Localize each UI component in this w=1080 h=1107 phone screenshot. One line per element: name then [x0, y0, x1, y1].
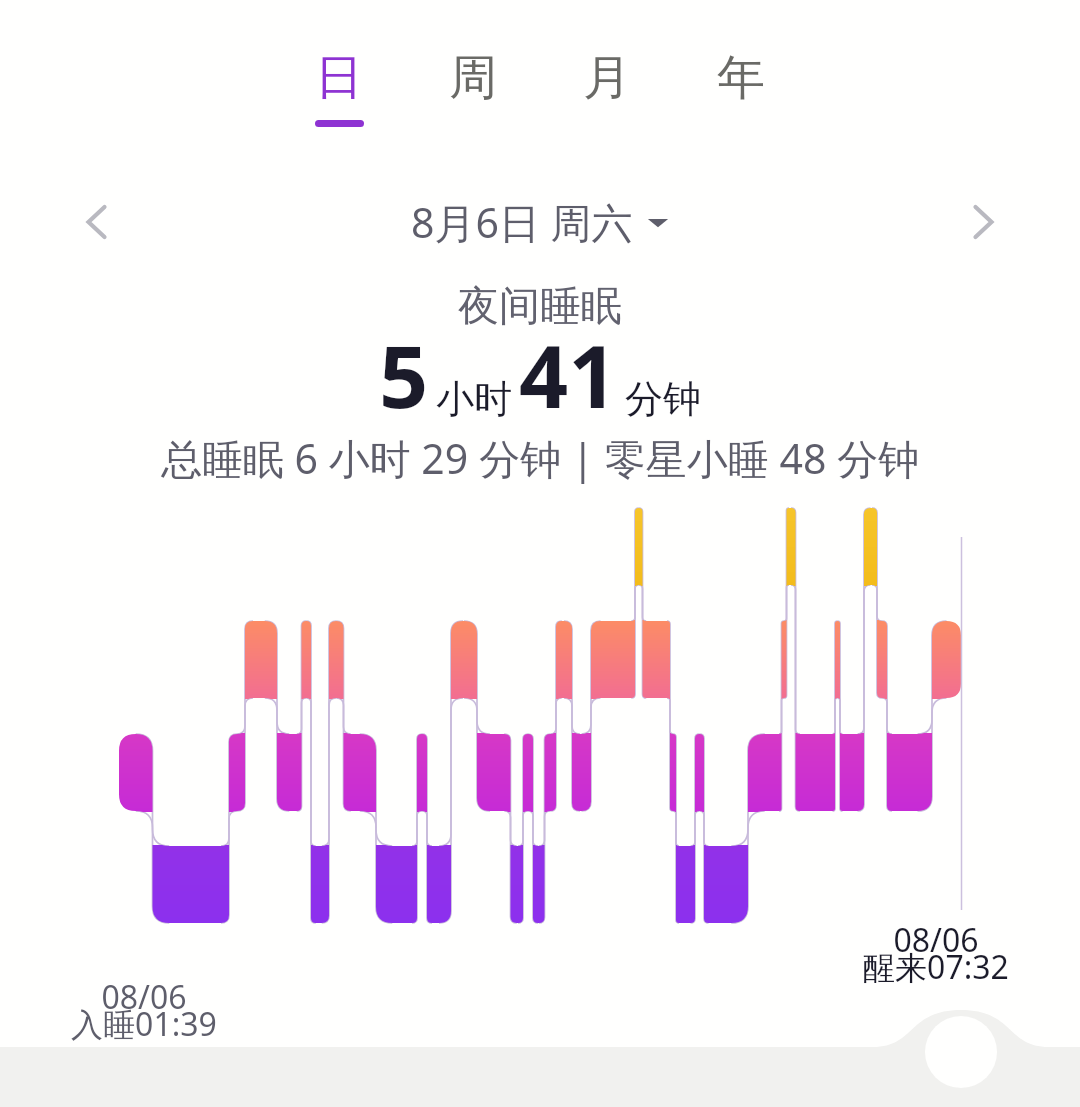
staticText: 41	[519, 316, 618, 433]
button[interactable]: 月	[540, 0, 674, 120]
button[interactable]: Add record	[927, 1016, 995, 1084]
staticText: 8月6日 周六	[411, 194, 633, 250]
staticText: 小时	[436, 375, 512, 423]
staticText: 08/06 入睡01:39	[44, 975, 244, 1046]
staticText: 分钟	[625, 375, 701, 423]
staticText: 夜间睡眠	[0, 281, 1080, 333]
staticText: 日	[315, 48, 363, 108]
staticText: 周	[449, 48, 497, 108]
button[interactable]: 8月6日 周六	[411, 194, 669, 250]
button[interactable]: Next day	[956, 194, 1012, 250]
button[interactable]: Previous day	[68, 194, 124, 250]
button[interactable]: 年	[674, 0, 808, 120]
staticText: 年	[717, 48, 765, 108]
staticText: 08/06 醒来07:32	[836, 918, 1036, 989]
staticText: 总睡眠 6 小时 29 分钟 | 零星小睡 48 分钟	[0, 430, 1080, 486]
staticText: 月	[583, 48, 631, 108]
staticText: 5	[379, 316, 429, 433]
button[interactable]: 日	[272, 0, 406, 127]
button[interactable]: 周	[406, 0, 540, 120]
